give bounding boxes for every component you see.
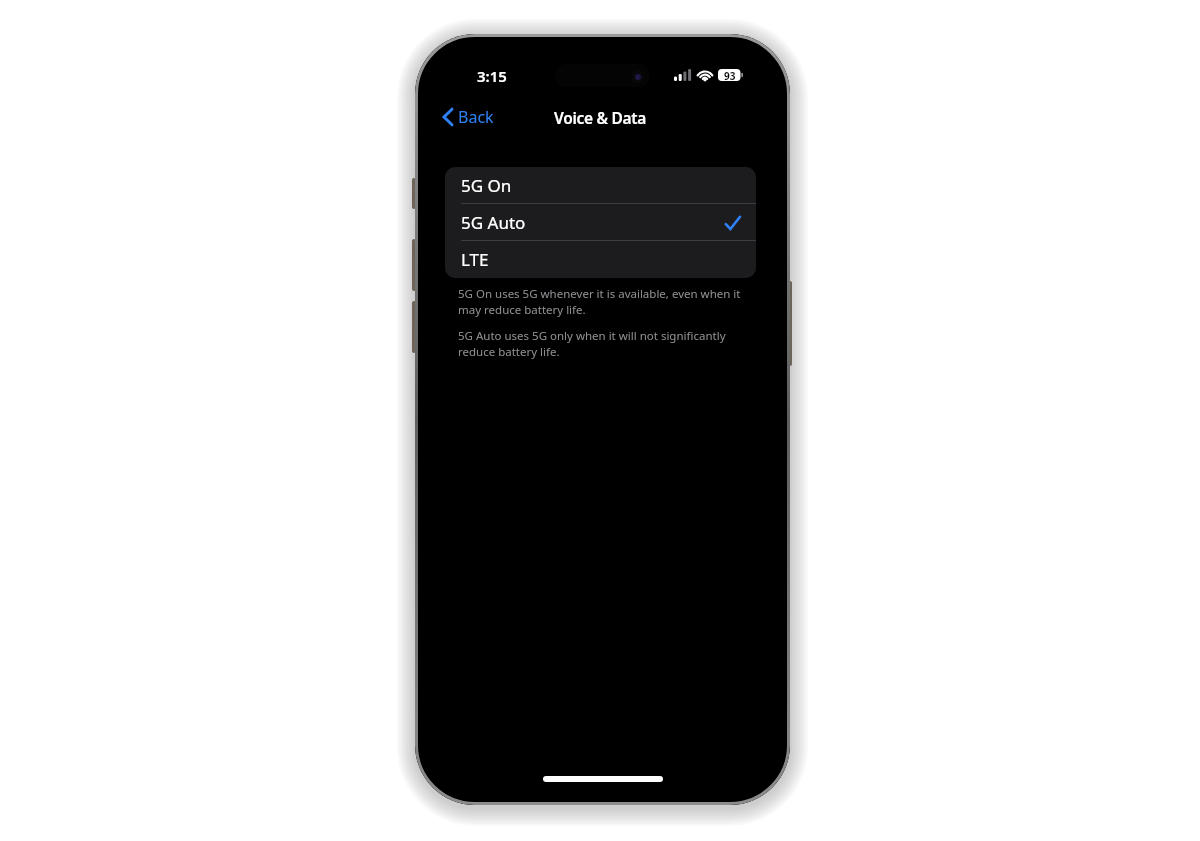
- button[interactable]: 5G On: [445, 167, 756, 204]
- staticText: 3:15: [477, 66, 507, 86]
- button[interactable]: 5G Auto: [445, 204, 756, 241]
- staticText: Back: [458, 106, 494, 128]
- staticText: 5G On uses 5G whenever it is available, …: [458, 286, 741, 317]
- staticText: 93: [724, 69, 736, 81]
- staticText: 5G On: [461, 174, 512, 197]
- staticText: 5G Auto: [461, 211, 526, 234]
- button[interactable]: Back: [435, 102, 555, 132]
- staticText: LTE: [461, 248, 489, 271]
- staticText: Voice & Data: [554, 107, 647, 128]
- button[interactable]: LTE: [445, 241, 756, 278]
- staticText: 5G Auto uses 5G only when it will not si…: [458, 328, 726, 359]
